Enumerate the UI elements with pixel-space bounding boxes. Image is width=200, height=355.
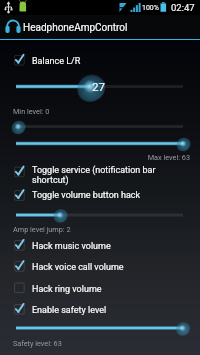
button[interactable]: [0, 51, 200, 71]
button[interactable]: Maximum level slider: [0, 137, 200, 151]
button[interactable]: [0, 238, 200, 258]
staticText: Safety level: 63: [13, 339, 62, 348]
staticText: Amp level jump: 2: [13, 225, 71, 234]
staticText: Toggle service (notification bar shortcu…: [32, 165, 162, 185]
button[interactable]: Balance level slider: [0, 75, 200, 97]
staticText: 100%: [142, 4, 159, 12]
button[interactable]: Minimum level slider: [0, 119, 200, 133]
button[interactable]: Safety level slider: [0, 321, 200, 335]
staticText: Hack voice call volume: [32, 262, 124, 273]
staticText: Max level: 63: [0, 153, 190, 162]
staticText: HeadphoneAmpControl: [23, 22, 128, 34]
button[interactable]: [0, 280, 200, 300]
button[interactable]: Amp level jump slider: [0, 208, 200, 222]
staticText: Enable safety level: [32, 305, 107, 316]
button[interactable]: [0, 164, 200, 192]
staticText: Balance L/R: [32, 56, 81, 67]
other: App icon: [2, 16, 24, 38]
staticText: Min level: 0: [13, 107, 50, 116]
staticText: Hack music volume: [32, 241, 111, 252]
staticText: 02:47: [171, 2, 195, 13]
staticText: Toggle volume button hack: [32, 190, 141, 201]
staticText: Hack ring volume: [32, 284, 102, 295]
staticText: 27: [92, 80, 106, 94]
button[interactable]: [0, 259, 200, 279]
button[interactable]: [0, 188, 200, 208]
button[interactable]: [0, 302, 200, 322]
